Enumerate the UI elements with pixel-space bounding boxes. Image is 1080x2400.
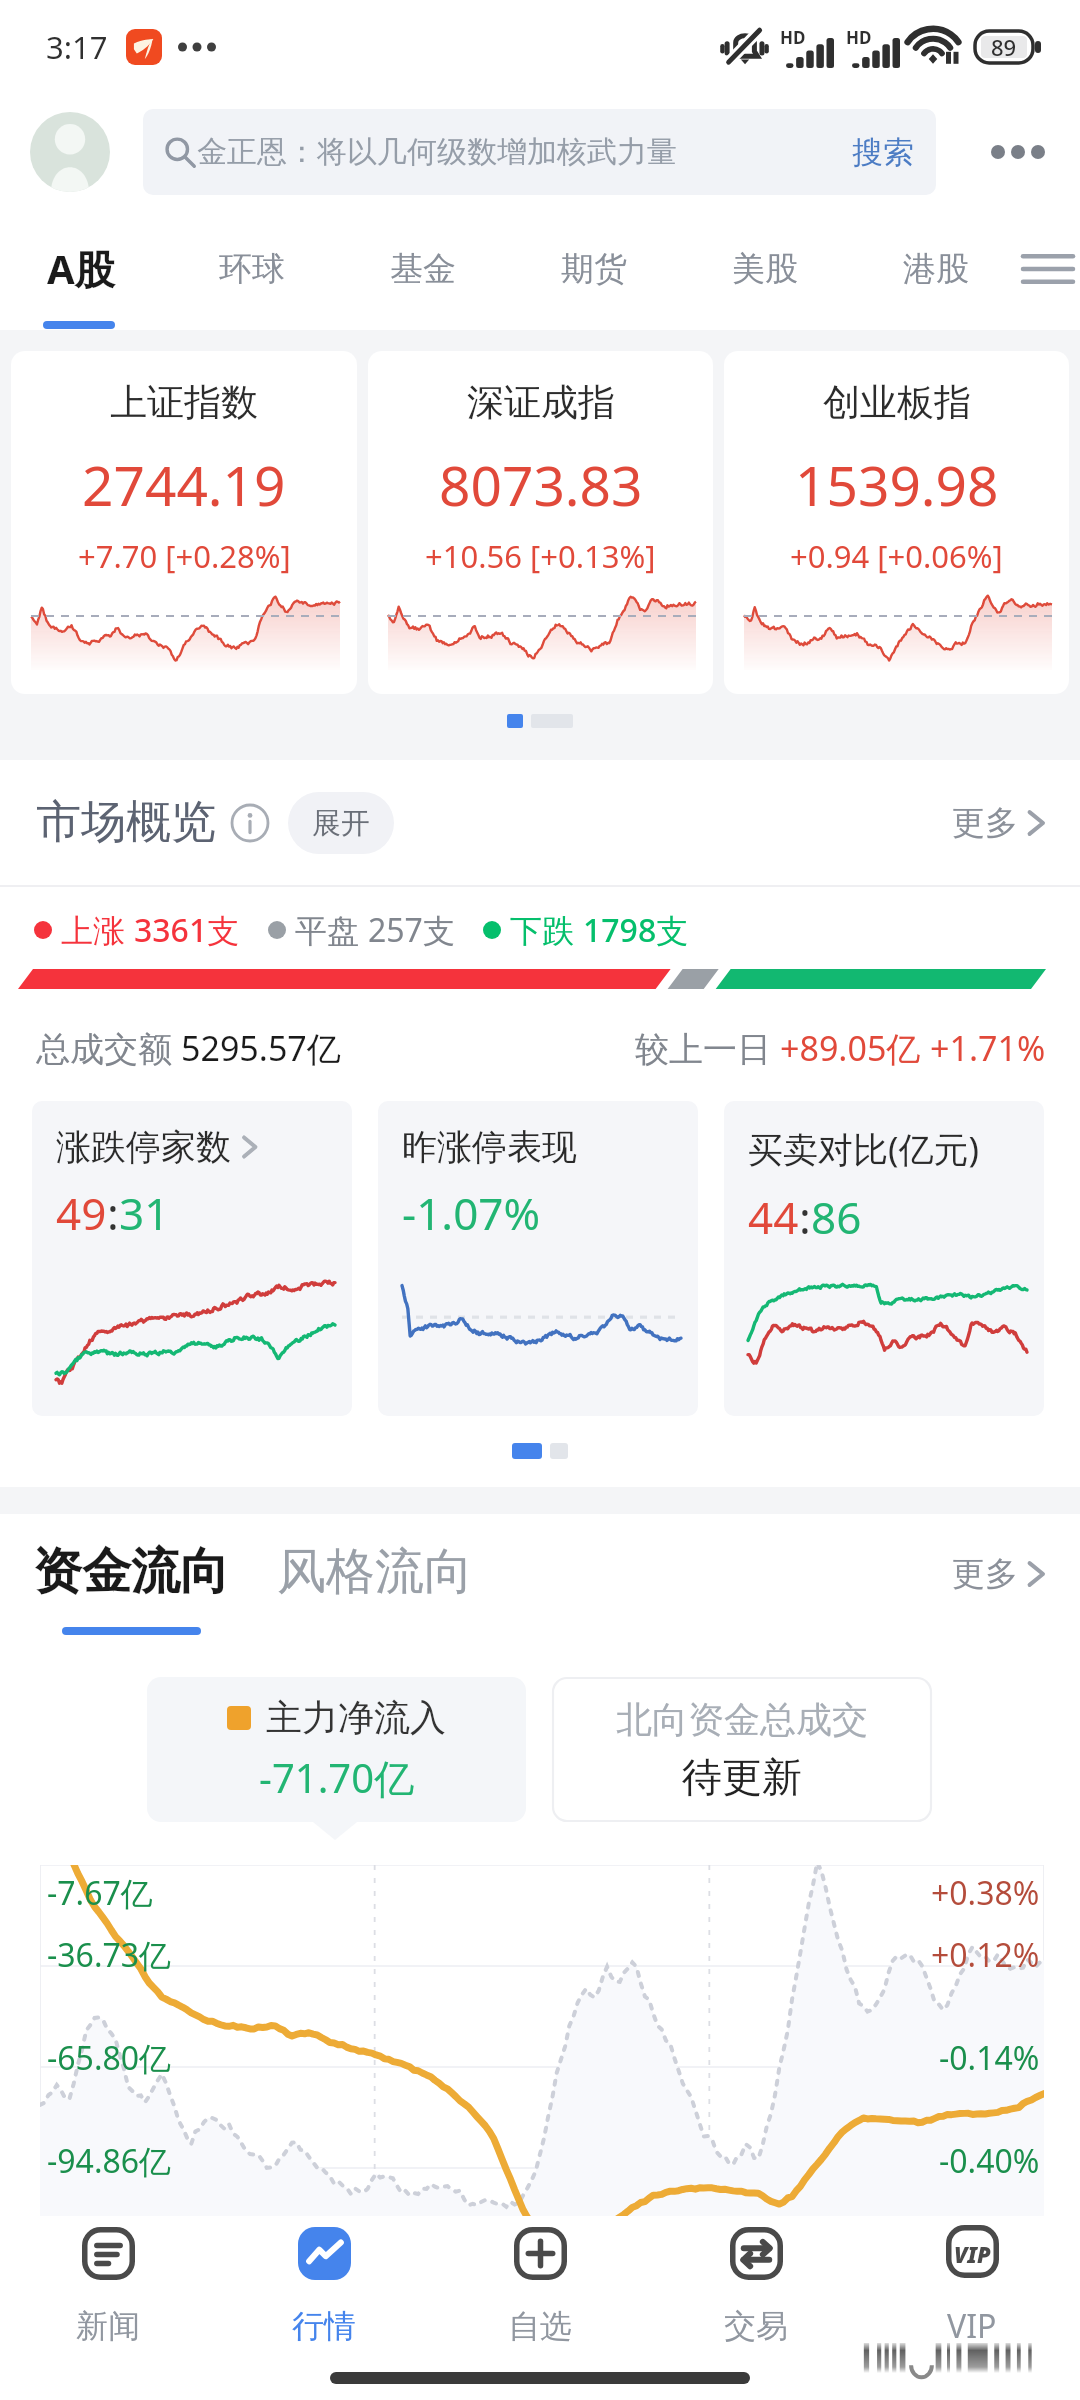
button[interactable]: 环球 — [166, 211, 337, 330]
staticText: 新闻 — [76, 2306, 140, 2346]
staticText: -94.86亿 — [47, 2139, 172, 2183]
staticText: +89.05亿 — [780, 1025, 930, 1071]
button[interactable]: 美股 — [679, 211, 850, 330]
button[interactable]: 基金 — [337, 211, 508, 330]
staticText: 昨涨停表现 — [402, 1125, 577, 1169]
staticText: +1.71% — [930, 1025, 1046, 1071]
staticText: 44 — [748, 1187, 799, 1247]
staticText: 1798支 — [583, 908, 689, 952]
staticText: 金正恩：将以几何级数增加核武力量 — [197, 133, 842, 171]
staticText: 1539.98 — [795, 447, 999, 522]
staticText: 环球 — [219, 248, 285, 290]
staticText: 上涨 — [61, 908, 134, 952]
button[interactable]: More options — [978, 112, 1058, 192]
button[interactable]: 资金流向 — [33, 1541, 229, 1635]
staticText: -7.67亿 — [47, 1871, 153, 1915]
button[interactable]: 更多 — [952, 802, 1046, 844]
staticText: 8073.83 — [439, 447, 643, 522]
staticText: HD — [846, 26, 872, 49]
staticText: : — [799, 1187, 811, 1247]
button[interactable]: 上证指数 — [11, 351, 357, 694]
staticText: 5295.57亿 — [181, 1025, 341, 1071]
button[interactable]: 昨涨停表现 — [378, 1101, 698, 1416]
button[interactable]: VIP — [864, 2225, 1080, 2348]
staticText: 基金 — [390, 248, 456, 290]
staticText: 89 — [991, 32, 1017, 62]
button[interactable]: 自选 — [432, 2227, 648, 2346]
button[interactable]: 金正恩：将以几何级数增加核武力量 — [143, 109, 936, 195]
staticText: 更多 — [952, 1553, 1018, 1595]
button[interactable]: Profile — [30, 112, 110, 192]
button[interactable]: 涨跌停家数 — [32, 1101, 352, 1416]
button[interactable]: 交易 — [648, 2227, 864, 2346]
staticText: 下跌 — [510, 908, 583, 952]
button[interactable]: 更多 — [952, 1541, 1046, 1583]
button[interactable]: 展开 — [288, 792, 394, 854]
staticText: 自选 — [508, 2306, 572, 2346]
staticText: +0.94 [+0.06%] — [790, 535, 1003, 577]
staticText: -71.70亿 — [259, 1750, 415, 1805]
staticText: 北向资金总成交 — [616, 1697, 868, 1742]
staticText: 3:17 — [46, 26, 108, 68]
staticText: 搜索 — [852, 133, 914, 172]
staticText: 港股 — [903, 248, 969, 290]
staticText: 美股 — [732, 248, 798, 290]
staticText: 行情 — [292, 2306, 356, 2346]
staticText: 49 — [56, 1183, 107, 1243]
button[interactable]: 市场概览 — [36, 794, 270, 851]
button[interactable]: 行情 — [216, 2227, 432, 2346]
staticText: 2744.19 — [82, 447, 286, 522]
staticText: 涨跌停家数 — [56, 1125, 231, 1169]
staticText: -1.07% — [402, 1183, 541, 1243]
staticText: 86 — [811, 1187, 862, 1247]
staticText: 期货 — [561, 248, 627, 290]
button[interactable]: 风格流向 — [277, 1541, 473, 1603]
button[interactable]: 期货 — [508, 211, 679, 330]
staticText: +7.70 [+0.28%] — [78, 535, 291, 577]
staticText: -36.73亿 — [47, 1933, 172, 1977]
staticText: +0.38% — [931, 1871, 1040, 1915]
staticText: 3361支 — [134, 908, 240, 952]
staticText: HD — [780, 26, 806, 49]
staticText: 主力净流入 — [266, 1695, 446, 1740]
staticText: 交易 — [724, 2306, 788, 2346]
staticText: 市场概览 — [36, 794, 216, 851]
staticText: +10.56 [+0.13%] — [425, 535, 656, 577]
button[interactable]: 主力净流入 — [147, 1677, 526, 1822]
button[interactable]: 新闻 — [0, 2227, 216, 2346]
staticText: 资金流向 — [33, 1541, 229, 1603]
staticText: 总成交额 — [36, 1025, 181, 1071]
button[interactable]: A股 — [0, 211, 166, 330]
staticText: 更多 — [952, 802, 1018, 844]
staticText: 风格流向 — [277, 1541, 473, 1603]
staticText: 创业板指 — [823, 379, 971, 426]
staticText: A股 — [47, 241, 115, 296]
staticText: +0.12% — [931, 1933, 1040, 1977]
staticText: VIP — [947, 2304, 997, 2348]
staticText: 31 — [119, 1183, 170, 1243]
staticText: 较上一日 — [635, 1025, 780, 1071]
staticText: -65.80亿 — [47, 2036, 172, 2080]
button[interactable]: 深证成指 — [368, 351, 713, 694]
staticText: 展开 — [312, 805, 370, 842]
staticText: : — [107, 1183, 119, 1243]
button[interactable]: 港股 — [850, 211, 1021, 330]
staticText: -0.40% — [939, 2139, 1040, 2183]
button[interactable]: 买卖对比(亿元) — [724, 1101, 1044, 1416]
button[interactable]: Menu — [1021, 211, 1075, 330]
staticText: 257支 — [368, 908, 455, 952]
staticText: 买卖对比(亿元) — [748, 1125, 980, 1173]
button[interactable]: 创业板指 — [724, 351, 1069, 694]
staticText: 待更新 — [682, 1752, 802, 1802]
staticText: 深证成指 — [467, 379, 615, 426]
staticText: 上证指数 — [110, 379, 258, 426]
button[interactable]: 北向资金总成交 — [552, 1677, 932, 1822]
staticText: 平盘 — [295, 908, 368, 952]
staticText: VIP — [954, 2239, 991, 2269]
staticText: -0.14% — [939, 2036, 1040, 2080]
